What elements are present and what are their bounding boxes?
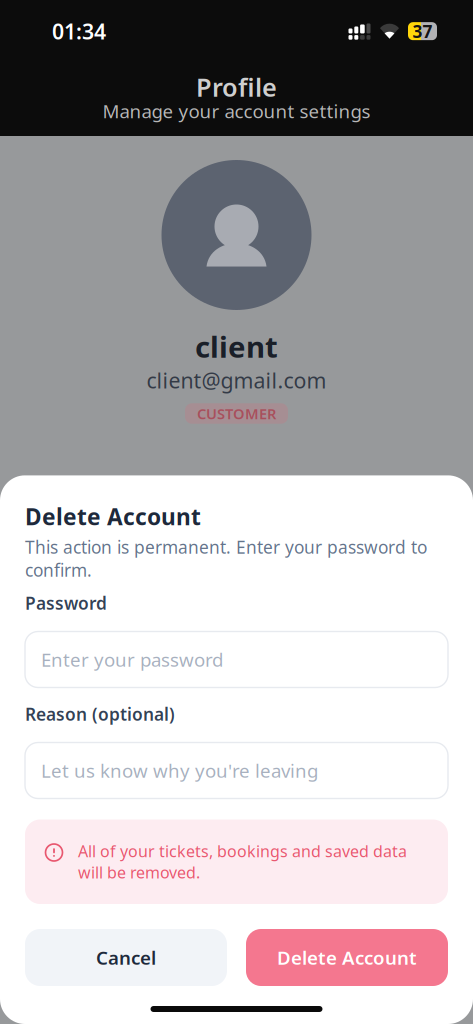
button[interactable]: Enter your password — [25, 631, 448, 687]
staticText: Delete Account — [277, 945, 417, 970]
staticText: CUSTOMER — [197, 404, 276, 423]
button[interactable]: Delete Account — [246, 929, 448, 986]
staticText: Reason (optional) — [25, 702, 175, 725]
staticText: Password — [25, 591, 107, 614]
staticText: All of your tickets, bookings and saved … — [78, 840, 407, 883]
staticText: 01:34 — [52, 17, 106, 45]
staticText: Delete Account — [25, 501, 201, 531]
button[interactable]: Cancel — [25, 929, 227, 986]
staticText: client — [195, 327, 278, 366]
staticText: Profile — [196, 70, 277, 104]
button[interactable]: Let us know why you're leaving — [25, 742, 448, 798]
staticText: Manage your account settings — [102, 99, 370, 123]
staticText: 37 — [412, 20, 432, 43]
staticText: This action is permanent. Enter your pas… — [25, 535, 427, 581]
staticText: Let us know why you're leaving — [41, 758, 318, 783]
staticText: client@gmail.com — [146, 366, 326, 394]
staticText: Enter your password — [41, 647, 223, 672]
staticText: Cancel — [96, 945, 156, 970]
